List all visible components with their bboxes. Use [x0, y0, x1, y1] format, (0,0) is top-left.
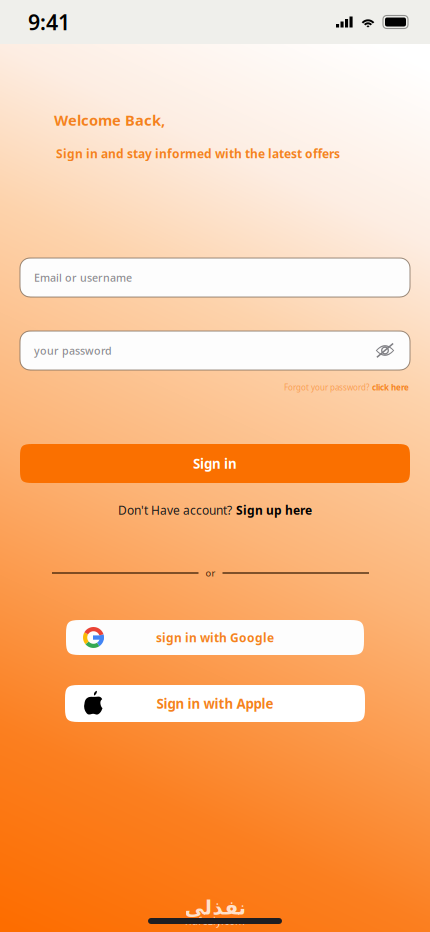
- button[interactable]: your password: [20, 331, 410, 370]
- staticText: or: [205, 567, 215, 579]
- staticText: 9:41: [28, 8, 70, 36]
- button[interactable]: sign in with Google: [66, 620, 364, 655]
- staticText: click here: [372, 382, 409, 393]
- button[interactable]: Don't Have account?: [118, 502, 312, 518]
- staticText: Sign up here: [236, 502, 312, 518]
- staticText: Don't Have account?: [118, 502, 232, 518]
- button[interactable]: Forgot your password?: [284, 382, 409, 393]
- staticText: Email or username: [34, 270, 132, 285]
- button[interactable]: Sign in: [20, 444, 410, 483]
- staticText: نفذلي: [184, 896, 246, 919]
- staticText: Sign in with Apple: [156, 695, 273, 712]
- staticText: your password: [34, 343, 112, 358]
- button[interactable]: Email or username: [20, 258, 410, 297]
- button[interactable]: Sign in with Apple: [65, 685, 365, 722]
- staticText: Forgot your password?: [284, 382, 369, 393]
- staticText: sign in with Google: [156, 629, 274, 645]
- staticText: nafezly.com: [185, 913, 245, 928]
- staticText: Welcome Back,: [54, 110, 165, 130]
- staticText: Sign in: [193, 455, 237, 472]
- staticText: Sign in and stay informed with the lates…: [56, 145, 340, 161]
